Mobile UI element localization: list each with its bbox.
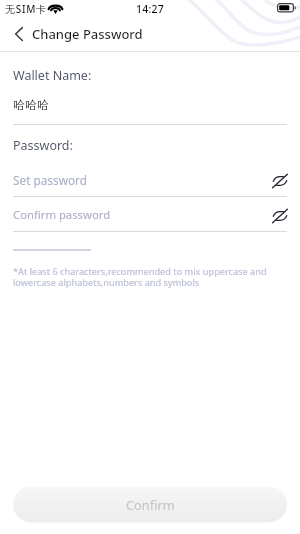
staticText: 14:27 — [136, 2, 164, 16]
staticText: 无SIM卡 — [5, 2, 47, 16]
staticText: *At least 6 characters,recommended to mi… — [13, 265, 275, 289]
staticText: Password: — [13, 137, 73, 154]
button[interactable]: Show password — [269, 170, 291, 192]
button[interactable]: Confirm — [13, 487, 287, 522]
staticText: Set password — [13, 172, 87, 188]
staticText: Wallet Name: — [13, 67, 92, 84]
staticText: Change Password — [32, 25, 143, 43]
button[interactable]: Back — [2, 18, 36, 51]
button[interactable]: Show confirm password — [269, 205, 291, 227]
staticText: Confirm — [126, 496, 175, 513]
staticText: 哈哈哈 — [13, 97, 49, 112]
staticText: Confirm password — [13, 207, 111, 222]
